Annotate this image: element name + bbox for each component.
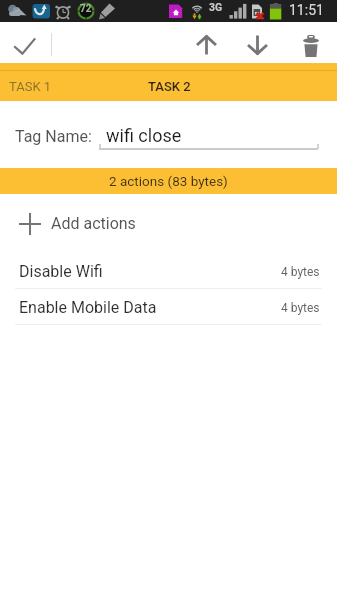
staticText: 3G <box>209 1 223 13</box>
button[interactable]: TASK 1 <box>0 71 110 101</box>
button[interactable]: Enable Mobile Data <box>0 289 337 325</box>
staticText: TASK 2 <box>148 79 191 94</box>
button[interactable]: Save <box>2 22 48 63</box>
staticText: Disable Wifi <box>19 262 103 281</box>
button[interactable]: Move down <box>233 22 285 63</box>
button[interactable]: Disable Wifi <box>0 253 337 289</box>
staticText: 72 <box>80 3 92 15</box>
staticText: Tag Name: <box>15 127 92 146</box>
button[interactable]: Add actions <box>0 194 337 253</box>
button[interactable]: Move up <box>181 22 233 63</box>
staticText: 4 bytes <box>281 265 320 279</box>
staticText: 11:51 <box>289 2 324 18</box>
staticText: Add actions <box>51 214 136 233</box>
staticText: TASK 1 <box>9 79 52 94</box>
staticText: 4 bytes <box>281 301 320 315</box>
staticText: wifi close <box>106 125 182 146</box>
button[interactable]: Delete <box>285 22 337 63</box>
button[interactable]: TASK 2 <box>109 71 229 101</box>
staticText: Enable Mobile Data <box>19 298 157 317</box>
staticText: 2 actions (83 bytes) <box>109 173 228 189</box>
